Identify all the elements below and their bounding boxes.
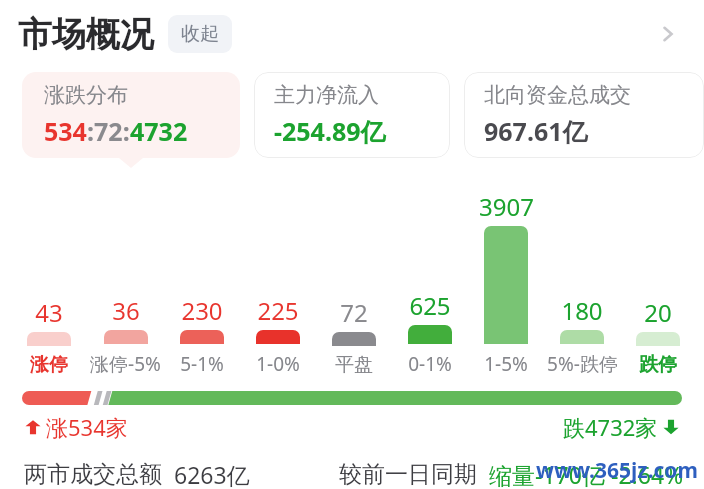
staticText: :72: bbox=[87, 114, 130, 148]
staticText: 较前一日同期 bbox=[339, 460, 477, 489]
staticText: 5-1% bbox=[180, 351, 224, 377]
staticText: -2.64% bbox=[611, 459, 684, 489]
staticText: 缩量-170亿 bbox=[489, 459, 605, 489]
staticText: 5%-跌停 bbox=[547, 351, 618, 377]
staticText: 跌4732家 bbox=[563, 412, 658, 442]
staticText: 0-1% bbox=[408, 351, 452, 377]
staticText: 72 bbox=[340, 296, 368, 329]
staticText: 1-0% bbox=[256, 351, 300, 377]
staticText: 967.61亿 bbox=[484, 114, 588, 148]
staticText: 625 bbox=[409, 289, 451, 322]
staticText: 6263亿 bbox=[174, 459, 250, 489]
staticText: 收起 bbox=[181, 22, 219, 46]
button[interactable]: 北向资金总成交 bbox=[464, 72, 704, 158]
staticText: 36 bbox=[112, 294, 140, 327]
button[interactable]: More bbox=[648, 14, 688, 54]
staticText: 43 bbox=[35, 296, 63, 329]
staticText: 涨停 bbox=[30, 353, 68, 377]
staticText: 4732 bbox=[130, 114, 188, 148]
staticText: 北向资金总成交 bbox=[484, 82, 631, 108]
staticText: 534 bbox=[44, 114, 87, 148]
staticText: www.365jz.com bbox=[536, 456, 698, 485]
staticText: -254.89亿 bbox=[274, 114, 386, 148]
button[interactable]: 涨跌分布 bbox=[22, 72, 240, 158]
staticText: 跌停 bbox=[639, 353, 677, 377]
button[interactable]: 收起 bbox=[168, 15, 232, 53]
staticText: 涨534家 bbox=[46, 412, 128, 442]
staticText: 3907 bbox=[479, 190, 534, 223]
staticText: 230 bbox=[181, 294, 223, 327]
staticText: 225 bbox=[257, 294, 299, 327]
button[interactable]: 主力净流入 bbox=[254, 72, 450, 158]
staticText: 1-5% bbox=[484, 351, 528, 377]
staticText: 主力净流入 bbox=[274, 82, 379, 108]
staticText: 180 bbox=[561, 294, 603, 327]
staticText: 涨跌分布 bbox=[44, 82, 128, 108]
staticText: 涨停-5% bbox=[90, 351, 161, 377]
staticText: 两市成交总额 bbox=[24, 460, 162, 489]
staticText: 平盘 bbox=[335, 353, 373, 377]
staticText: 市场概况 bbox=[18, 13, 154, 56]
staticText: 20 bbox=[644, 296, 672, 329]
